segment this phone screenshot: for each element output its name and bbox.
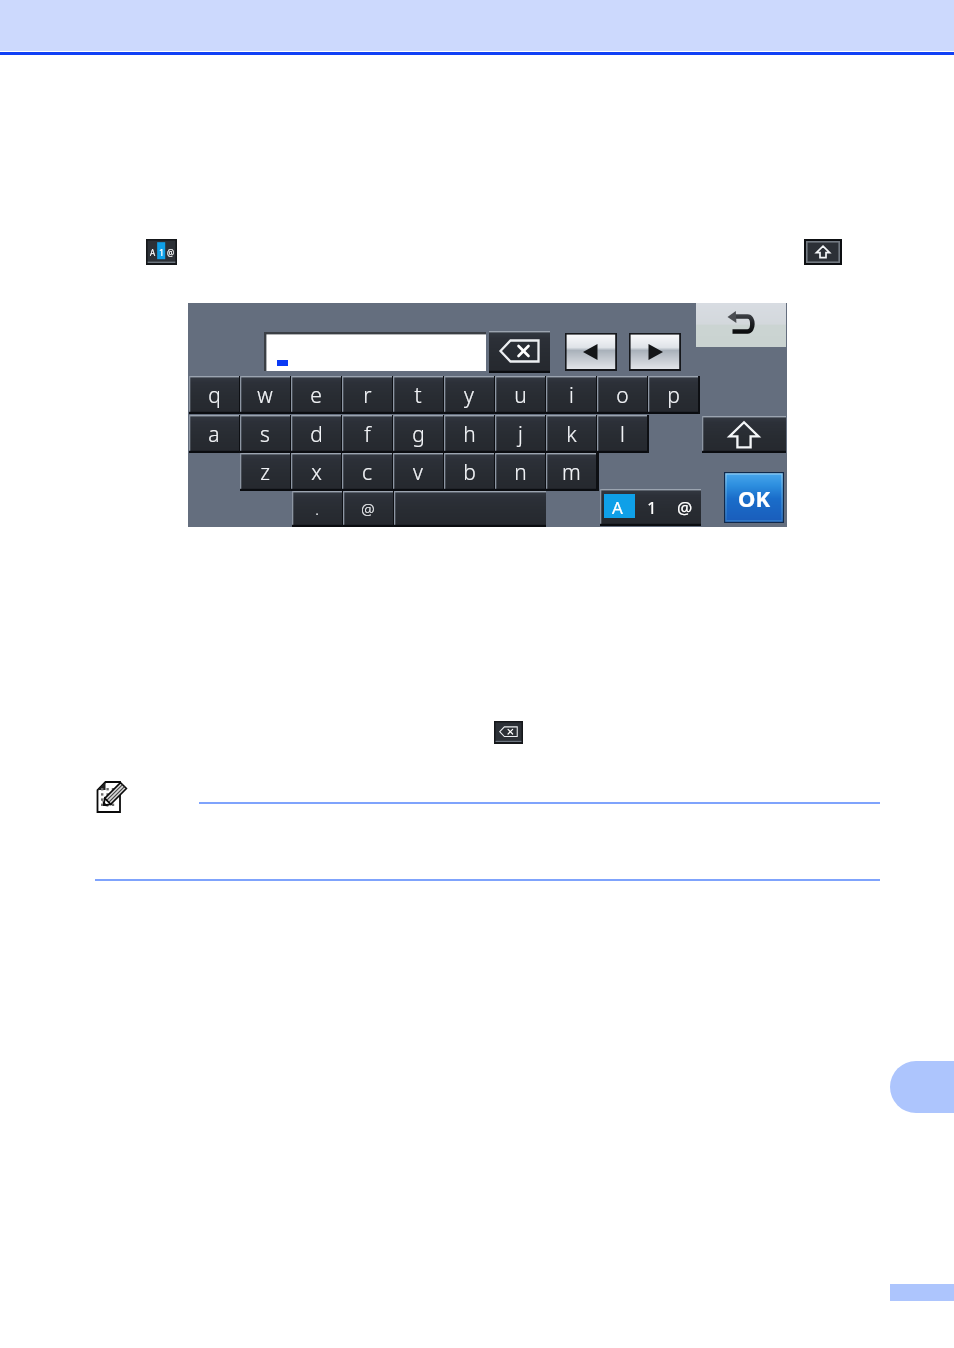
button[interactable]: Text entry field: [264, 332, 486, 371]
staticText: r: [363, 381, 372, 410]
button[interactable]: Space: [394, 491, 546, 527]
staticText: 1: [159, 246, 165, 258]
button[interactable]: t: [393, 376, 443, 414]
button[interactable]: Move cursor right: [629, 333, 681, 371]
button[interactable]: a: [189, 415, 239, 453]
button[interactable]: l: [597, 415, 647, 453]
button[interactable]: j: [495, 415, 545, 453]
staticText: OK: [738, 483, 771, 513]
staticText: A: [612, 496, 623, 519]
staticText: .: [315, 499, 319, 519]
button[interactable]: Backspace key: [494, 721, 523, 744]
staticText: t: [414, 381, 422, 410]
staticText: l: [620, 420, 625, 449]
button[interactable]: Move cursor left: [565, 333, 617, 371]
button[interactable]: c: [342, 453, 392, 491]
button[interactable]: z: [240, 453, 290, 491]
staticText: @: [167, 247, 175, 258]
staticText: s: [260, 420, 270, 449]
staticText: i: [569, 381, 574, 410]
button[interactable]: u: [495, 376, 545, 414]
staticText: p: [667, 381, 680, 410]
staticText: x: [311, 458, 322, 487]
button[interactable]: v: [393, 453, 443, 491]
staticText: c: [362, 458, 372, 487]
button[interactable]: m: [546, 453, 596, 491]
button[interactable]: q: [189, 376, 239, 414]
staticText: q: [208, 381, 221, 410]
staticText: j: [518, 420, 523, 449]
button[interactable]: k: [546, 415, 596, 453]
button[interactable]: OK: [724, 472, 784, 523]
staticText: z: [260, 458, 270, 487]
button[interactable]: o: [597, 376, 647, 414]
button[interactable]: i: [546, 376, 596, 414]
button[interactable]: r: [342, 376, 392, 414]
button[interactable]: h: [444, 415, 494, 453]
button[interactable]: Shift key: [804, 239, 842, 265]
staticText: f: [364, 420, 371, 449]
button[interactable]: e: [291, 376, 341, 414]
staticText: d: [310, 420, 323, 449]
staticText: w: [257, 381, 273, 410]
staticText: v: [413, 458, 423, 487]
staticText: @: [361, 499, 375, 519]
button[interactable]: w: [240, 376, 290, 414]
staticText: 1: [647, 496, 657, 519]
button[interactable]: y: [444, 376, 494, 414]
staticText: g: [412, 420, 425, 449]
button[interactable]: Keyboard mode key: [146, 239, 177, 265]
button[interactable]: n: [495, 453, 545, 491]
button[interactable]: s: [240, 415, 290, 453]
button[interactable]: @: [343, 491, 393, 527]
staticText: h: [463, 420, 476, 449]
button[interactable]: d: [291, 415, 341, 453]
staticText: o: [616, 381, 629, 410]
staticText: y: [464, 381, 474, 410]
button[interactable]: .: [292, 491, 342, 527]
button[interactable]: Shift: [702, 416, 786, 453]
staticText: b: [463, 458, 476, 487]
staticText: e: [310, 381, 322, 410]
staticText: u: [514, 381, 527, 410]
button[interactable]: Backspace: [489, 331, 550, 373]
button[interactable]: g: [393, 415, 443, 453]
button[interactable]: Back: [696, 303, 786, 347]
staticText: a: [208, 420, 220, 449]
button[interactable]: f: [342, 415, 392, 453]
staticText: n: [514, 458, 527, 487]
button[interactable]: p: [648, 376, 698, 414]
staticText: @: [677, 496, 693, 519]
button[interactable]: x: [291, 453, 341, 491]
button[interactable]: Change keyboard mode: [600, 489, 701, 526]
staticText: k: [566, 420, 577, 449]
button[interactable]: b: [444, 453, 494, 491]
staticText: A: [150, 247, 156, 258]
staticText: m: [562, 458, 581, 487]
